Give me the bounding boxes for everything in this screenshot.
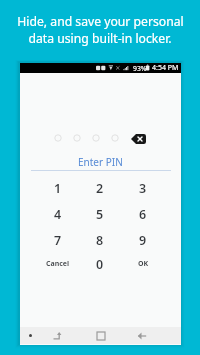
button[interactable]: 8 <box>81 228 119 252</box>
button[interactable]: OK <box>124 252 162 276</box>
staticText: 93% <box>133 64 147 73</box>
staticText: Hide, and save your personal <box>17 13 184 30</box>
button[interactable]: Recent apps <box>53 331 63 341</box>
button[interactable]: 4 <box>39 202 77 226</box>
staticText: 5 <box>96 206 104 223</box>
button[interactable]: 9 <box>124 228 162 252</box>
staticText: 8 <box>96 232 104 249</box>
staticText: 3 <box>139 180 147 197</box>
button[interactable]: 7 <box>39 228 77 252</box>
staticText: Enter PIN <box>78 155 123 169</box>
staticText: 2 <box>96 180 104 197</box>
button[interactable]: Back <box>137 331 147 341</box>
button[interactable]: 0 <box>81 252 119 276</box>
button[interactable]: Home <box>97 332 105 340</box>
button[interactable]: 1 <box>39 176 77 200</box>
staticText: 4:54 PM <box>152 63 179 73</box>
staticText: OK <box>138 259 149 269</box>
button[interactable]: Backspace <box>131 134 146 144</box>
button[interactable]: 2 <box>81 176 119 200</box>
staticText: 1 <box>54 180 62 197</box>
button[interactable]: 6 <box>124 202 162 226</box>
staticText: data using built-in locker. <box>28 30 172 47</box>
staticText: 7 <box>54 232 62 249</box>
staticText: 4 <box>54 206 62 223</box>
button[interactable]: Cancel <box>39 252 77 276</box>
button[interactable]: 3 <box>124 176 162 200</box>
staticText: 0 <box>96 256 104 273</box>
staticText: Cancel <box>46 259 70 269</box>
staticText: 6 <box>139 206 147 223</box>
button[interactable]: 5 <box>81 202 119 226</box>
staticText: 9 <box>139 232 147 249</box>
